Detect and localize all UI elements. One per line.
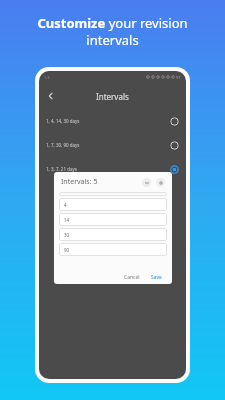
staticText: Customize your revision intervals bbox=[10, 14, 215, 49]
button[interactable]: Cancel bbox=[121, 272, 143, 283]
staticText: 14 bbox=[64, 217, 70, 223]
button[interactable]: Back bbox=[43, 88, 59, 104]
button[interactable]: 90 bbox=[59, 243, 167, 256]
staticText: 1, 4, 14, 30 days bbox=[46, 118, 80, 124]
staticText: Intervals: 5 bbox=[61, 177, 98, 187]
button[interactable]: 1, 7, 30, 90 days bbox=[39, 133, 186, 157]
staticText: 1, 3, 7, 21 days bbox=[46, 166, 77, 172]
staticText: Save bbox=[151, 274, 162, 281]
button[interactable]: 4 bbox=[59, 198, 167, 211]
button[interactable]: Increase bbox=[156, 178, 165, 187]
button[interactable]: 1, 3, 7, 21 days bbox=[39, 157, 186, 181]
staticText: 90 bbox=[64, 247, 70, 253]
staticText: 1:3 bbox=[44, 75, 50, 80]
button[interactable]: 1, 4, 14, 30 days bbox=[39, 109, 186, 133]
button[interactable]: 30 bbox=[59, 228, 167, 241]
staticText: 4 bbox=[64, 202, 67, 208]
staticText: Cancel bbox=[124, 274, 140, 281]
staticText: 1, 7, 30, 90 days bbox=[46, 142, 80, 148]
staticText: Intervals bbox=[96, 91, 129, 102]
button[interactable]: Decrease bbox=[142, 178, 151, 187]
button[interactable]: Save bbox=[148, 272, 165, 283]
staticText: 97 bbox=[176, 75, 181, 80]
button[interactable]: 14 bbox=[59, 213, 167, 226]
staticText: 30 bbox=[64, 232, 70, 238]
